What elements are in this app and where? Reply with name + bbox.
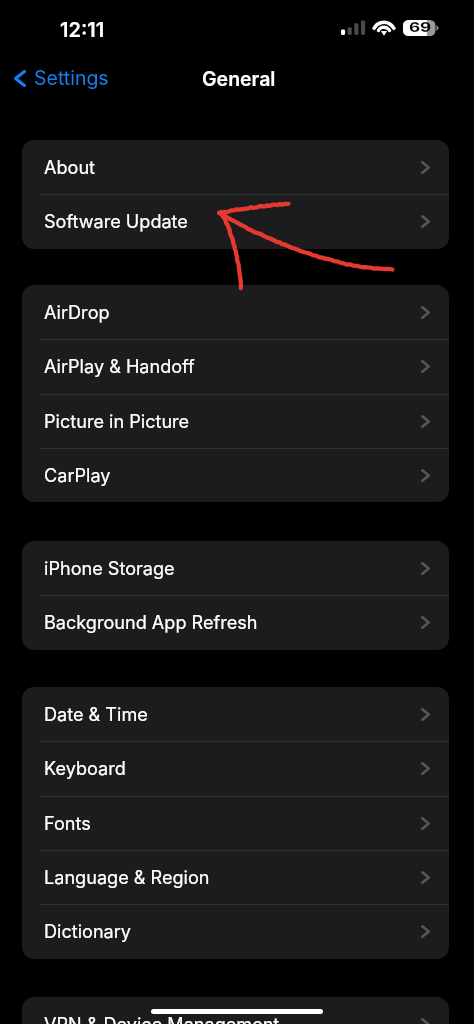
button[interactable]: Keyboard bbox=[22, 741, 449, 795]
staticText: iPhone Storage bbox=[44, 557, 175, 579]
button[interactable]: iPhone Storage bbox=[22, 541, 449, 595]
button[interactable]: Language & Region bbox=[22, 850, 449, 904]
button[interactable]: Fonts bbox=[22, 796, 449, 850]
staticText: General bbox=[202, 67, 276, 91]
button[interactable]: Background App Refresh bbox=[22, 595, 449, 649]
staticText: Background App Refresh bbox=[44, 611, 258, 633]
staticText: Settings bbox=[34, 66, 109, 90]
staticText: Dictionary bbox=[44, 920, 132, 942]
staticText: Keyboard bbox=[44, 757, 126, 779]
staticText: Fonts bbox=[44, 812, 91, 834]
button[interactable]: AirPlay & Handoff bbox=[22, 339, 449, 393]
staticText: Language & Region bbox=[44, 866, 210, 888]
staticText: VPN & Device Management bbox=[44, 1013, 280, 1024]
staticText: 12:11 bbox=[60, 18, 105, 42]
button[interactable]: Software Update bbox=[22, 194, 449, 248]
button[interactable]: AirDrop bbox=[22, 285, 449, 339]
staticText: AirDrop bbox=[44, 301, 110, 323]
button[interactable]: Picture in Picture bbox=[22, 394, 449, 448]
staticText: AirPlay & Handoff bbox=[44, 355, 195, 377]
staticText: About bbox=[44, 156, 96, 178]
button[interactable]: CarPlay bbox=[22, 448, 449, 502]
button[interactable]: VPN & Device Management bbox=[22, 997, 449, 1024]
staticText: 69 bbox=[409, 19, 432, 35]
button[interactable]: Date & Time bbox=[22, 687, 449, 741]
button[interactable]: Dictionary bbox=[22, 904, 449, 958]
staticText: Software Update bbox=[44, 210, 188, 232]
staticText: Date & Time bbox=[44, 703, 148, 725]
button[interactable]: About bbox=[22, 140, 449, 194]
button[interactable]: Back to Settings bbox=[6, 60, 117, 96]
staticText: CarPlay bbox=[44, 464, 111, 486]
staticText: Picture in Picture bbox=[44, 410, 190, 432]
